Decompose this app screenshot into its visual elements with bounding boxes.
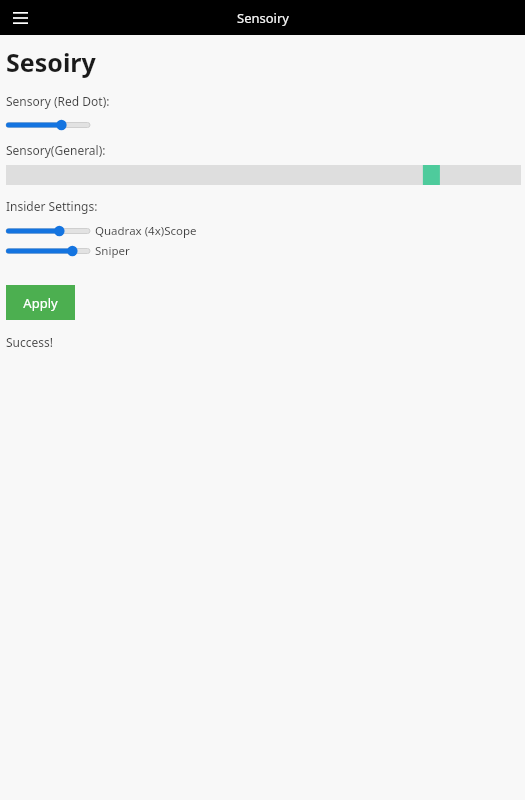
staticText: Quadrax (4x)Scope: [95, 223, 197, 239]
staticText: Sensory (Red Dot):: [6, 93, 110, 109]
staticText: Sensory(General):: [6, 142, 106, 158]
button[interactable]: Sniper sensitivity: [6, 242, 90, 260]
button[interactable]: Sensory Red Dot level: [6, 116, 90, 134]
staticText: Sensoiry: [237, 9, 289, 27]
button[interactable]: Open navigation menu: [6, 4, 34, 32]
staticText: Insider Settings:: [6, 198, 98, 214]
button[interactable]: Apply: [6, 285, 75, 320]
staticText: Sesoiry: [6, 45, 96, 79]
staticText: Apply: [23, 294, 58, 312]
button[interactable]: Sensory general level: [6, 165, 521, 185]
button[interactable]: Quadrax 4x Scope sensitivity: [6, 222, 90, 240]
staticText: Sniper: [95, 243, 130, 259]
staticText: Success!: [6, 334, 54, 350]
